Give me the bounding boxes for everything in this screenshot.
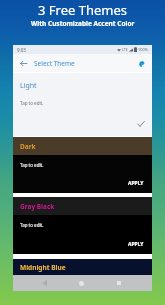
button[interactable]: Back xyxy=(37,277,51,289)
button[interactable]: Dark xyxy=(13,137,152,193)
staticText: With Customizable Accent Color xyxy=(31,19,135,28)
staticText: 9:03 xyxy=(17,47,26,53)
staticText: Tap to edit. xyxy=(20,162,44,168)
staticText: APPLY xyxy=(128,180,144,187)
staticText: Tap to edit. xyxy=(20,100,44,106)
staticText: 100% xyxy=(138,47,149,52)
button[interactable]: APPLY xyxy=(128,241,144,248)
button[interactable]: Gray Black xyxy=(13,197,152,254)
staticText: Light xyxy=(20,81,37,91)
button[interactable]: APPLY xyxy=(128,180,144,187)
staticText: Gray Black xyxy=(20,202,55,211)
button[interactable]: Accent color xyxy=(135,57,148,70)
staticText: Dark xyxy=(20,142,36,151)
staticText: Tap to edit. xyxy=(20,222,44,228)
staticText: LTE xyxy=(122,47,128,52)
staticText: Midnight Blue xyxy=(20,263,66,272)
staticText: Select Theme xyxy=(34,59,75,68)
button[interactable]: Midnight Blue xyxy=(13,259,152,275)
staticText: 3 Free Themes xyxy=(38,1,128,19)
button[interactable]: Back xyxy=(17,57,30,70)
button[interactable]: Home xyxy=(74,277,88,289)
staticText: APPLY xyxy=(128,241,144,248)
button[interactable]: Recents xyxy=(112,277,126,289)
button[interactable]: Light xyxy=(13,73,152,136)
